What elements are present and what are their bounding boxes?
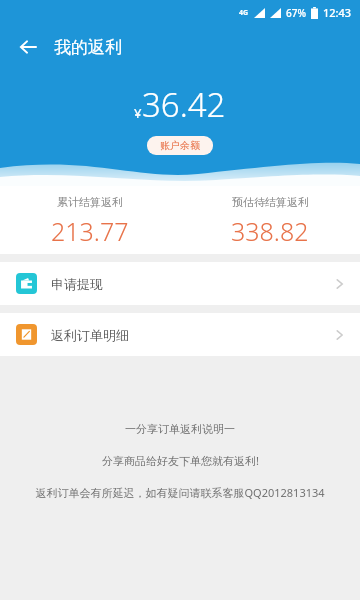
staticText: 累计结算返利	[57, 195, 123, 209]
staticText: ¥	[134, 104, 142, 122]
staticText: 213.77	[51, 214, 129, 248]
button[interactable]: 账户余额	[147, 136, 213, 155]
staticText: 我的返利	[54, 37, 122, 58]
button[interactable]: Back	[8, 27, 48, 67]
staticText: 67%	[286, 6, 306, 20]
button[interactable]: 申请提现	[0, 262, 360, 305]
staticText: 12:43	[323, 5, 352, 20]
staticText: 申请提现	[51, 276, 103, 292]
staticText: 返利订单会有所延迟，如有疑问请联系客服QQ2012813134	[35, 485, 325, 500]
staticText: 返利订单明细	[51, 327, 129, 343]
button[interactable]: 预估待结算返利	[180, 186, 360, 248]
button[interactable]: 累计结算返利	[0, 186, 180, 248]
staticText: 4G	[239, 8, 249, 18]
staticText: 分享商品给好友下单您就有返利!	[102, 453, 259, 468]
staticText: 账户余额	[160, 139, 200, 152]
staticText: 36.42	[142, 82, 226, 127]
staticText: 预估待结算返利	[232, 195, 309, 209]
button[interactable]: 返利订单明细	[0, 313, 360, 356]
staticText: 一分享订单返利说明一	[125, 422, 235, 436]
staticText: 338.82	[231, 214, 309, 248]
